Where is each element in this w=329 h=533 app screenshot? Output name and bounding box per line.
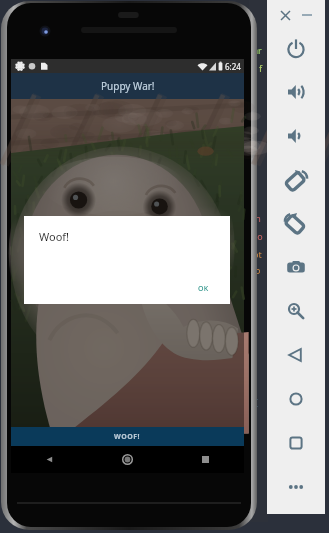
staticText: co (253, 230, 263, 242)
button[interactable]: Close (276, 6, 294, 24)
staticText: Puppy War! (101, 79, 155, 93)
button[interactable]: Rotate left (280, 164, 312, 196)
button[interactable]: OK (192, 280, 215, 298)
staticText: 6:24 (225, 61, 241, 72)
button[interactable]: Puppy War! (11, 73, 244, 99)
staticText: P (255, 266, 261, 278)
button[interactable]: Back (280, 339, 312, 371)
staticText: ot (253, 248, 262, 260)
button[interactable]: Overview (280, 427, 312, 459)
staticText: f (259, 62, 263, 74)
staticText: in (253, 212, 261, 224)
staticText: OK (198, 284, 209, 294)
button[interactable]: Power (280, 32, 312, 64)
button[interactable]: Recent apps (166, 446, 244, 473)
button[interactable]: Home (88, 446, 166, 473)
button[interactable]: Zoom (280, 295, 312, 327)
button[interactable]: Home (280, 383, 312, 415)
button[interactable]: Take screenshot (280, 251, 312, 283)
button[interactable]: Minimize (298, 6, 316, 24)
staticText: ar (253, 44, 262, 56)
staticText: WOOF! (114, 432, 141, 442)
button[interactable]: Volume up (280, 76, 312, 108)
button[interactable]: Rotate right (280, 207, 312, 239)
button[interactable]: WOOF! (11, 427, 244, 446)
staticText: ( (255, 396, 258, 408)
button[interactable]: More (280, 471, 312, 503)
staticText: Woof! (39, 229, 70, 244)
button[interactable]: Volume down (280, 120, 312, 152)
button[interactable]: Back (11, 446, 88, 473)
